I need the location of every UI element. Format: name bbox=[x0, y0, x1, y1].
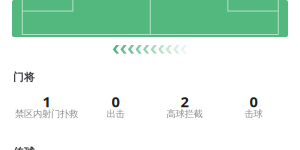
staticText: 禁区内射门扑救 bbox=[15, 108, 78, 120]
staticText: 1 bbox=[42, 92, 50, 111]
staticText: 0 bbox=[111, 92, 119, 111]
staticText: 击球 bbox=[244, 108, 262, 120]
staticText: 2 bbox=[180, 92, 188, 111]
staticText: 门将 bbox=[13, 71, 35, 84]
staticText: 0 bbox=[249, 92, 257, 111]
staticText: 传球 bbox=[13, 146, 35, 150]
staticText: 高球拦截 bbox=[166, 108, 202, 120]
staticText: 出击 bbox=[106, 108, 124, 120]
